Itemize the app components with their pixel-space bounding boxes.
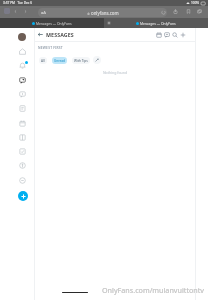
staticText: NEWEST FIRST — [38, 45, 63, 49]
button[interactable]: Messages — OnlyFans — [104, 18, 208, 28]
button[interactable]: Share — [173, 9, 178, 14]
button[interactable]: Payments — [15, 158, 29, 172]
staticText: With Tips — [74, 59, 88, 63]
button[interactable]: Messages — [15, 73, 29, 87]
button[interactable]: Collections — [15, 87, 29, 101]
button[interactable]: Back — [13, 9, 18, 14]
button[interactable]: Reload — [161, 10, 166, 15]
button[interactable]: Profile — [18, 33, 26, 41]
staticText: MESSAGES — [46, 31, 74, 38]
button[interactable]: Archive — [155, 31, 162, 38]
button[interactable]: Search — [171, 31, 178, 38]
button[interactable]: Notifications — [15, 58, 29, 72]
staticText: All — [41, 59, 45, 63]
button[interactable]: aA — [38, 8, 167, 17]
staticText: aA — [41, 10, 47, 16]
button[interactable]: Tabs — [197, 9, 202, 14]
button[interactable]: Subscriptions — [15, 101, 29, 115]
button[interactable]: New post — [18, 191, 28, 201]
button[interactable]: New message — [179, 31, 186, 38]
staticText: OnlyFans.com/mulanvuittontv — [102, 285, 205, 295]
button[interactable]: Queue — [15, 116, 29, 130]
staticText: 3:57 PM Tue Dec 6 — [3, 1, 32, 5]
button[interactable]: Unread — [52, 57, 67, 64]
staticText: 100% — [191, 1, 200, 5]
button[interactable]: Vault — [15, 130, 29, 144]
button[interactable]: Forward — [23, 9, 28, 14]
button[interactable]: Unsent — [163, 31, 170, 38]
staticText: Unread — [54, 59, 65, 63]
button[interactable]: Home — [15, 44, 29, 58]
button[interactable]: Edit filters — [93, 56, 101, 64]
staticText: onlyfans.com — [91, 10, 119, 16]
button[interactable]: Show sidebar — [4, 8, 10, 14]
staticText: Messages — OnlyFans — [140, 21, 176, 26]
button[interactable]: Close tab — [107, 21, 111, 25]
button[interactable]: Statements — [15, 144, 29, 158]
button[interactable]: Bookmarks — [186, 9, 191, 14]
button[interactable]: Messages — OnlyFans — [0, 18, 104, 28]
staticText: Messages — OnlyFans — [36, 21, 72, 26]
staticText: Nothing found — [35, 70, 195, 75]
button[interactable]: With Tips — [72, 57, 90, 64]
button[interactable]: All — [39, 57, 47, 64]
button[interactable]: More — [15, 173, 29, 187]
button[interactable]: Back — [37, 31, 44, 38]
